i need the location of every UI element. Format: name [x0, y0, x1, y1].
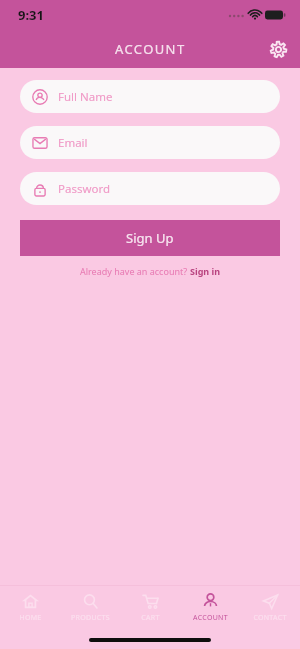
staticText: HOME	[19, 613, 42, 623]
button[interactable]: Password	[20, 172, 280, 205]
staticText: Full Name	[58, 89, 113, 105]
staticText: Already have an account?	[80, 265, 190, 277]
staticText: Password	[58, 181, 111, 197]
staticText: Email	[58, 135, 88, 151]
button[interactable]: Settings	[263, 34, 293, 64]
button[interactable]: Email	[20, 126, 280, 159]
staticText: Sign Up	[126, 229, 174, 247]
staticText: CONTACT	[253, 613, 287, 623]
button[interactable]: HOME	[0, 586, 60, 630]
staticText: PRODUCTS	[71, 613, 110, 623]
button[interactable]: CART	[120, 586, 180, 630]
button[interactable]: CONTACT	[240, 586, 300, 630]
button[interactable]: Sign Up	[20, 220, 280, 256]
button[interactable]: Already have an account?	[0, 265, 300, 277]
button[interactable]: PRODUCTS	[60, 586, 120, 630]
staticText: ACCOUNT	[193, 613, 228, 623]
staticText: CART	[141, 613, 160, 623]
staticText: ACCOUNT	[115, 40, 186, 58]
button[interactable]: Full Name	[20, 80, 280, 113]
staticText: Sign in	[190, 265, 221, 277]
staticText: 9:31	[18, 6, 44, 24]
button[interactable]: ACCOUNT	[180, 586, 240, 630]
